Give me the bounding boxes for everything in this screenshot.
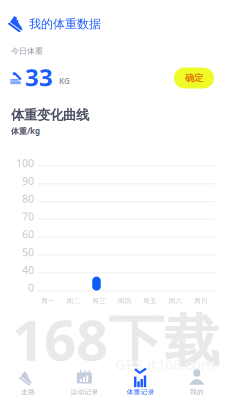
staticText: 80 bbox=[22, 191, 34, 206]
staticText: 周四 bbox=[117, 297, 131, 305]
button[interactable]: 我的 bbox=[169, 368, 225, 398]
staticText: 70 bbox=[22, 209, 34, 223]
staticText: 90 bbox=[22, 174, 34, 188]
staticText: 周二 bbox=[66, 297, 80, 305]
staticText: 50 bbox=[22, 245, 34, 259]
staticText: 体重记录 bbox=[127, 388, 155, 396]
staticText: 周一 bbox=[41, 297, 55, 305]
staticText: 168下载 bbox=[12, 302, 220, 376]
button[interactable]: 体重记录 bbox=[112, 368, 169, 398]
staticText: 走路 bbox=[21, 388, 35, 396]
staticText: 60 bbox=[22, 227, 34, 241]
staticText: 40 bbox=[22, 263, 34, 277]
staticText: 周五 bbox=[143, 297, 157, 305]
staticText: 33 bbox=[25, 61, 53, 93]
button[interactable]: 我的体重数据 bbox=[0, 13, 160, 35]
staticText: 我的 bbox=[190, 388, 204, 396]
button[interactable]: 确定 bbox=[174, 67, 214, 88]
staticText: 0 bbox=[28, 280, 34, 295]
staticText: 周日 bbox=[194, 297, 208, 305]
button[interactable]: 走路 bbox=[0, 368, 56, 398]
staticText: 100 bbox=[16, 156, 34, 170]
staticText: 确定 bbox=[185, 72, 203, 84]
staticText: 今日体重 bbox=[11, 46, 43, 56]
staticText: 体重变化曲线 bbox=[11, 107, 89, 123]
staticText: GPS.it168.com bbox=[115, 354, 215, 374]
staticText: 体重/kg bbox=[11, 126, 40, 136]
staticText: KG bbox=[59, 76, 70, 86]
button[interactable]: 运动记录 bbox=[56, 368, 112, 398]
staticText: 运动记录 bbox=[70, 388, 98, 396]
staticText: 周三 bbox=[92, 297, 106, 305]
staticText: 我的体重数据 bbox=[29, 17, 101, 31]
staticText: 周六 bbox=[168, 297, 182, 305]
